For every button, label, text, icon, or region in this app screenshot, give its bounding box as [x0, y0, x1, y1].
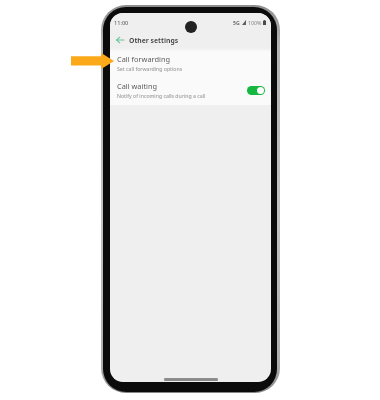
staticText: 11:00 [114, 19, 129, 27]
staticText: 5G [233, 19, 240, 26]
button[interactable]: Call waiting, on [247, 86, 265, 95]
staticText: Set call forwarding options [117, 65, 183, 72]
button[interactable]: Call waiting [110, 78, 271, 105]
button[interactable]: Back [112, 32, 128, 47]
staticText: 100% [248, 19, 262, 26]
staticText: Notify of incoming calls during a call [117, 92, 206, 99]
staticText: Other settings [129, 36, 179, 45]
staticText: Call forwarding [117, 54, 171, 64]
staticText: Call waiting [117, 81, 158, 91]
button[interactable]: Call forwarding [110, 52, 271, 78]
